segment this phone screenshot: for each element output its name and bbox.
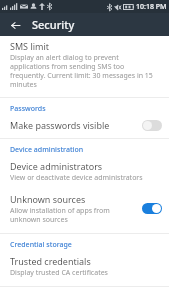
staticText: Device administrators [10, 160, 103, 172]
button[interactable]: SMS limit [0, 38, 169, 91]
button[interactable]: Back [7, 17, 23, 33]
staticText: Security [32, 17, 75, 32]
staticText: Credential storage [10, 240, 72, 250]
staticText: Make passwords visible [10, 119, 110, 131]
staticText: Allow installation of apps from unknown … [10, 206, 136, 224]
button[interactable]: Toggle on [142, 203, 162, 214]
button[interactable]: Toggle off [142, 120, 162, 131]
staticText: Unknown sources [10, 193, 86, 205]
button[interactable]: Make passwords visible [0, 117, 169, 133]
staticText: Passwords [10, 104, 46, 114]
staticText: 10:18 PM [136, 2, 167, 12]
button[interactable]: Unknown sources [0, 191, 169, 226]
staticText: Display an alert dialog to prevent appli… [10, 53, 159, 89]
staticText: Trusted credentials [10, 255, 91, 267]
staticText: View or deactivate device administrators [10, 173, 143, 183]
staticText: Device administration [10, 145, 84, 155]
button[interactable]: Device administrators [0, 158, 169, 185]
staticText: Display trusted CA certificates [10, 268, 108, 278]
button[interactable]: Trusted credentials [0, 253, 169, 280]
staticText: SMS limit [10, 40, 50, 52]
